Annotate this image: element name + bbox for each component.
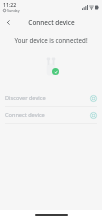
staticText: Connect device — [5, 111, 90, 119]
staticText: 11:22 — [3, 1, 17, 8]
staticText: Discover device — [5, 94, 90, 102]
button[interactable]: Discover device — [0, 90, 102, 106]
staticText: Sunday — [7, 8, 20, 13]
button[interactable]: Connect device — [0, 107, 102, 123]
staticText: Connect device — [28, 18, 75, 27]
staticText: Your device is connected! — [0, 36, 102, 44]
button[interactable]: Back — [2, 16, 15, 29]
